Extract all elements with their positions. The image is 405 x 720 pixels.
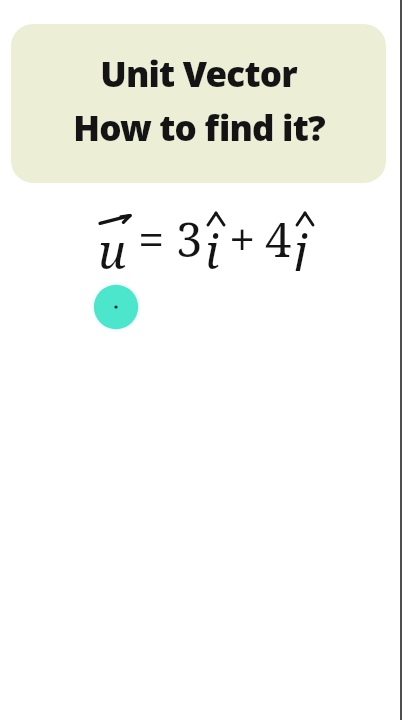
staticText: u (98, 219, 127, 271)
staticText: Unit Vector (100, 50, 297, 98)
staticText: 3 (176, 207, 203, 271)
staticText: = (138, 207, 165, 271)
staticText: How to find it? (73, 104, 325, 152)
staticText: + (229, 207, 256, 271)
staticText: i (205, 219, 220, 271)
staticText: j (294, 219, 308, 271)
button[interactable]: Pen cursor (93, 284, 139, 330)
button[interactable]: Unit Vector (11, 24, 386, 183)
staticText: 4 (265, 207, 292, 271)
